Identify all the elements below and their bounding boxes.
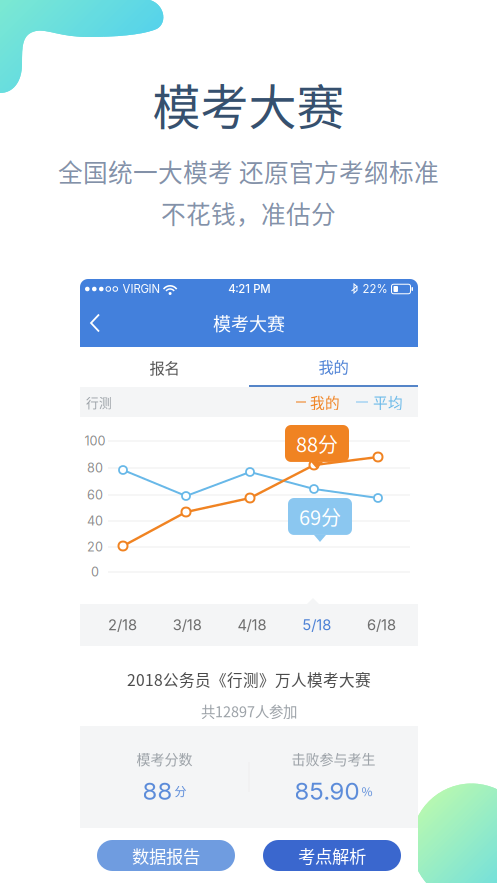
button[interactable]: 考点解析	[263, 840, 401, 871]
button[interactable]: 报名	[80, 347, 249, 387]
staticText: 共12897人参加	[201, 701, 297, 721]
button[interactable]: 2/18	[90, 604, 155, 646]
staticText: 2/18	[108, 616, 137, 634]
button[interactable]: Back	[80, 305, 110, 340]
staticText: 88分	[296, 429, 338, 458]
staticText: 不花钱，准估分	[161, 195, 336, 231]
staticText: 60	[87, 487, 103, 503]
staticText: %	[361, 782, 372, 800]
button[interactable]: 3/18	[155, 604, 220, 646]
staticText: 3/18	[173, 616, 202, 634]
staticText: 4/18	[237, 616, 266, 634]
staticText: 100	[84, 433, 105, 449]
staticText: 2018公务员《行测》万人模考大赛	[127, 668, 371, 691]
staticText: 模考大赛	[213, 310, 285, 336]
staticText: 击败参与考生	[291, 748, 375, 769]
staticText: 20	[87, 539, 103, 555]
staticText: 88	[142, 777, 172, 806]
staticText: 40	[87, 513, 103, 529]
staticText: 85.90	[294, 777, 359, 806]
button[interactable]: 5/18	[284, 604, 349, 646]
staticText: 平均	[373, 391, 403, 413]
staticText: 我的	[318, 355, 348, 377]
staticText: 考点解析	[298, 843, 366, 868]
staticText: 报名	[149, 356, 179, 378]
button[interactable]: 数据报告	[97, 840, 235, 871]
staticText: 模考大赛	[152, 69, 344, 138]
staticText: 0	[91, 564, 99, 580]
staticText: 6/18	[367, 616, 396, 634]
staticText: 5/18	[302, 616, 331, 634]
button[interactable]: 我的	[249, 347, 418, 387]
staticText: 分	[174, 782, 186, 800]
staticText: 我的	[310, 391, 340, 413]
staticText: VIRGIN	[123, 282, 161, 296]
staticText: 模考分数	[136, 748, 192, 769]
button[interactable]: 4/18	[220, 604, 284, 646]
staticText: 80	[87, 460, 103, 476]
staticText: 行测	[86, 393, 112, 411]
staticText: 4:21 PM	[228, 282, 270, 296]
staticText: 全国统一大模考 还原官方考纲标准	[58, 153, 439, 189]
staticText: 22%	[362, 282, 387, 296]
button[interactable]: 6/18	[349, 604, 414, 646]
staticText: 数据报告	[132, 843, 200, 868]
staticText: 69分	[299, 502, 341, 531]
